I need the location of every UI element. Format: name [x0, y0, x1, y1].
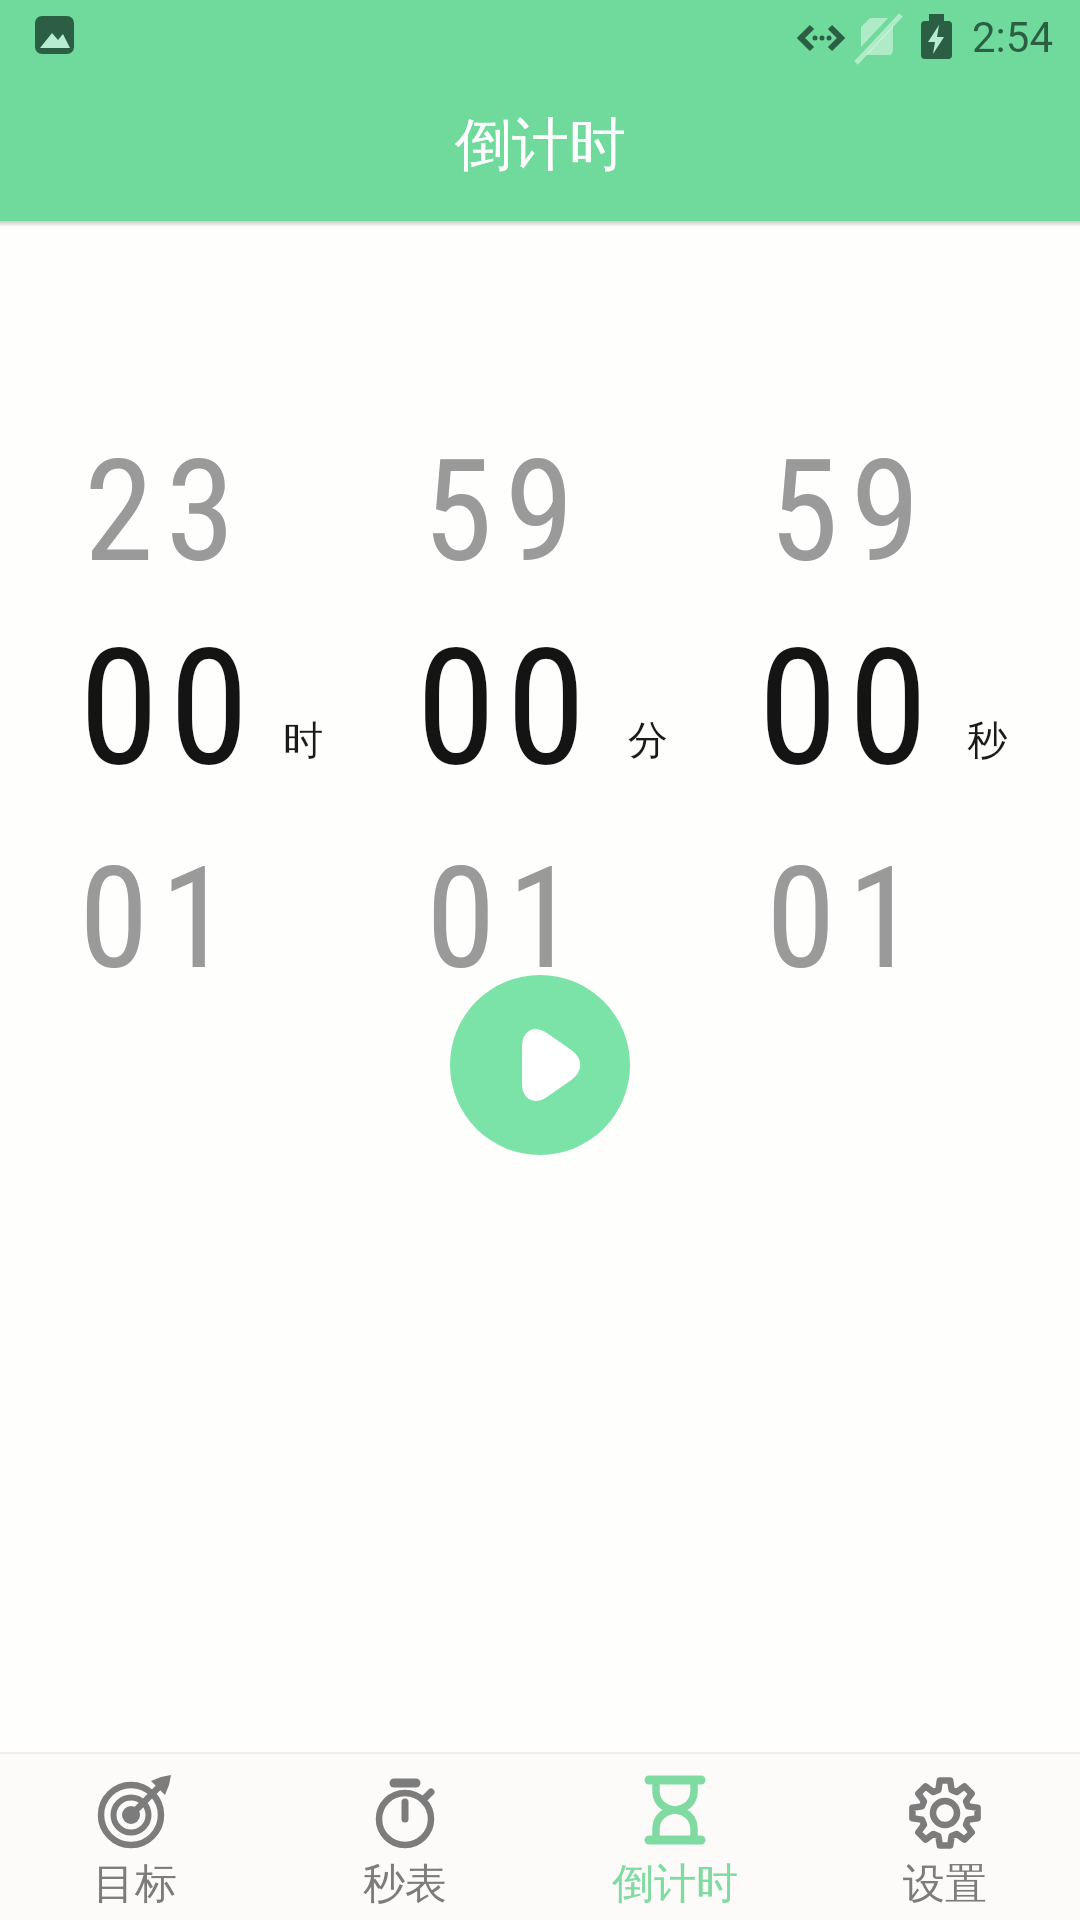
staticText: 23 — [84, 429, 248, 594]
staticText: 分 — [628, 715, 668, 765]
button[interactable]: 秒表 — [270, 1754, 540, 1920]
staticText: 时 — [283, 715, 323, 765]
button[interactable] — [450, 975, 630, 1155]
button[interactable]: 设置 — [810, 1754, 1080, 1920]
staticText: 01 — [766, 836, 930, 1001]
staticText: 倒计时 — [455, 109, 626, 181]
staticText: 00 — [79, 613, 259, 803]
staticText: 倒计时 — [612, 1858, 738, 1911]
staticText: 59 — [769, 429, 933, 594]
staticText: 00 — [416, 613, 596, 803]
staticText: 01 — [79, 836, 243, 1001]
button[interactable]: 倒计时 — [540, 1754, 810, 1920]
staticText: 秒表 — [363, 1858, 447, 1911]
button[interactable]: 目标 — [0, 1754, 270, 1920]
staticText: 00 — [758, 613, 938, 803]
staticText: 秒 — [967, 715, 1007, 765]
staticText: 目标 — [93, 1858, 177, 1911]
staticText: 2:54 — [972, 13, 1053, 62]
staticText: 01 — [426, 836, 590, 1001]
staticText: 59 — [423, 429, 587, 594]
staticText: 设置 — [903, 1858, 987, 1911]
